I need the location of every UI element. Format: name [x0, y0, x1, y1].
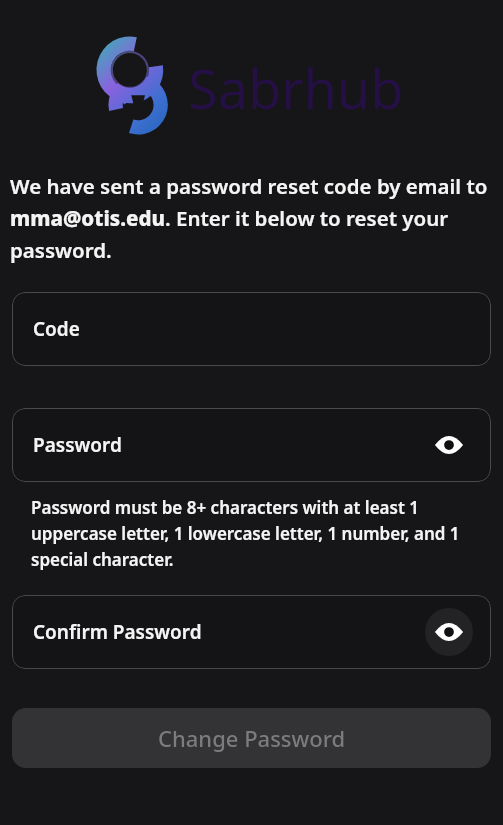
staticText: Change Password — [158, 723, 346, 753]
staticText: We have sent a password reset code by em… — [10, 172, 491, 264]
staticText: Password — [33, 432, 122, 458]
button[interactable]: Confirm Password — [12, 595, 491, 669]
staticText: Sabrhub — [188, 51, 404, 125]
button[interactable]: Show password — [425, 421, 473, 469]
button[interactable]: Password — [12, 408, 491, 482]
staticText: Password must be 8+ characters with at l… — [31, 496, 489, 571]
button[interactable]: Change Password — [12, 708, 491, 768]
staticText: Confirm Password — [33, 619, 202, 645]
button[interactable]: Show password — [425, 608, 473, 656]
staticText: Code — [33, 316, 80, 342]
button[interactable]: Code — [12, 292, 491, 366]
